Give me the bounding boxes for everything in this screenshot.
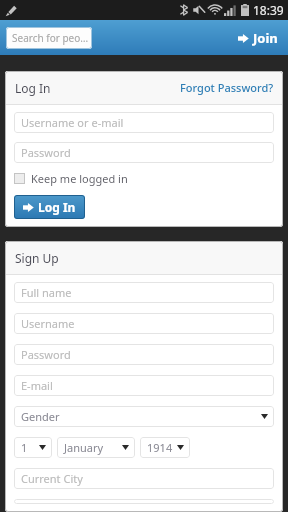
staticText: Current City <box>21 471 83 486</box>
staticText: Username or e-mail <box>21 115 124 130</box>
staticText: Sign Up <box>15 250 59 266</box>
staticText: 18:39 <box>253 2 284 18</box>
staticText: Join <box>253 29 278 47</box>
staticText: Search for peo… <box>12 31 89 45</box>
staticText: Forgot Password? <box>180 80 274 95</box>
button[interactable]: Username <box>14 313 274 334</box>
staticText: 1 <box>21 440 28 455</box>
button[interactable]: Username or e-mail <box>14 112 274 133</box>
staticText: Username <box>21 316 75 331</box>
button[interactable]: January <box>57 437 135 458</box>
button[interactable]: Forgot Password? <box>171 73 283 102</box>
button[interactable]: Keep me logged in <box>14 171 128 186</box>
staticText: Password <box>21 145 71 160</box>
staticText: Gender <box>21 409 60 424</box>
button[interactable]: 1 <box>14 437 52 458</box>
staticText: Hometown <box>21 499 79 504</box>
staticText: Keep me logged in <box>31 171 128 186</box>
staticText: January <box>64 440 104 455</box>
button[interactable]: Full name <box>14 282 274 303</box>
button[interactable]: 1914 <box>140 437 190 458</box>
staticText: Log In <box>38 199 76 215</box>
staticText: 1914 <box>147 440 173 455</box>
button[interactable]: Gender <box>14 406 274 427</box>
button[interactable]: Password <box>14 344 274 365</box>
button[interactable]: Hometown <box>14 499 274 504</box>
staticText: Password <box>21 347 71 362</box>
staticText: Full name <box>21 285 72 300</box>
staticText: E-mail <box>21 378 53 393</box>
button[interactable]: Join <box>228 22 288 54</box>
button[interactable]: Search for peo… <box>6 27 92 49</box>
button[interactable]: E-mail <box>14 375 274 396</box>
button[interactable]: Current City <box>14 468 274 489</box>
button[interactable]: Log In <box>14 195 85 219</box>
staticText: Log In <box>15 80 51 96</box>
button[interactable]: Password <box>14 142 274 163</box>
